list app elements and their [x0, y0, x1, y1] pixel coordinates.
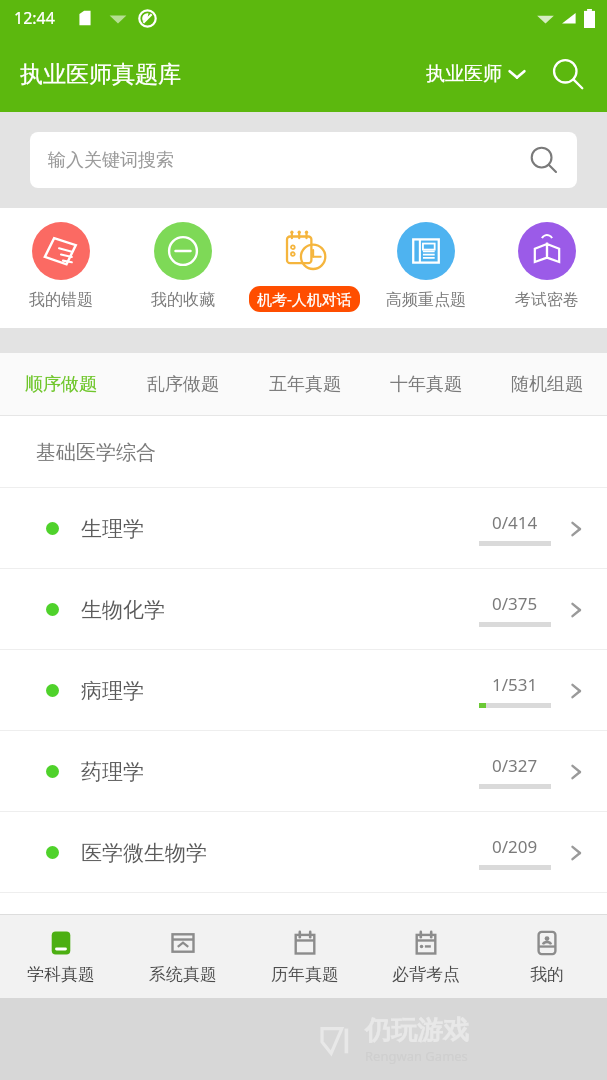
staticText: 医学微生物学 [81, 840, 207, 866]
staticText: 执业医师真题库 [20, 60, 181, 89]
staticText: 高频重点题 [386, 290, 466, 310]
staticText: 我的收藏 [151, 290, 215, 310]
button[interactable]: 五年真题 [244, 353, 365, 415]
button[interactable]: 生理学 [0, 488, 607, 569]
button[interactable]: 乱序做题 [122, 353, 244, 415]
staticText: 十年真题 [390, 373, 462, 396]
staticText: 0/209 [492, 835, 538, 858]
button[interactable]: 病理学 [0, 650, 607, 731]
staticText: 考试密卷 [515, 290, 579, 310]
button[interactable]: 随机组题 [486, 353, 607, 415]
staticText: 12:44 [14, 7, 55, 29]
staticText: 我的 [530, 964, 564, 985]
staticText: 必背考点 [392, 964, 460, 985]
button[interactable]: 十年真题 [365, 353, 486, 415]
button[interactable]: 医学微生物学 [0, 812, 607, 893]
button[interactable]: 顺序做题 [0, 353, 122, 415]
button[interactable]: 执业医师 [422, 56, 531, 92]
button[interactable]: 考试密卷 [486, 222, 607, 328]
staticText: 我的错题 [29, 290, 93, 310]
staticText: 历年真题 [271, 964, 339, 985]
button[interactable]: 高频重点题 [365, 222, 486, 328]
staticText: 五年真题 [269, 373, 341, 396]
staticText: 病理学 [81, 678, 144, 704]
staticText: 0/375 [492, 592, 538, 615]
button[interactable]: 学科真题 [0, 915, 122, 998]
staticText: 执业医师 [426, 62, 502, 86]
button[interactable]: Search [545, 51, 591, 97]
staticText: 生理学 [81, 516, 144, 542]
other: Search [529, 145, 559, 175]
button[interactable]: 我的错题 [0, 222, 122, 328]
staticText: 机考-人机对话 [257, 289, 352, 309]
button[interactable]: 历年真题 [244, 915, 365, 998]
staticText: 随机组题 [511, 373, 583, 396]
staticText: 仍玩游戏 [365, 1014, 469, 1047]
staticText: 基础医学综合 [36, 440, 156, 465]
button[interactable]: 生物化学 [0, 569, 607, 650]
button[interactable]: 我的 [486, 915, 607, 998]
staticText: 生物化学 [81, 597, 165, 623]
button[interactable]: 必背考点 [365, 915, 486, 998]
staticText: 乱序做题 [147, 373, 219, 396]
staticText: 药理学 [81, 759, 144, 785]
button[interactable]: 药理学 [0, 731, 607, 812]
button[interactable]: 我的收藏 [122, 222, 244, 328]
button[interactable]: 机考-人机对话 [244, 222, 365, 328]
staticText: 系统真题 [149, 964, 217, 985]
staticText: 0/414 [492, 511, 538, 534]
button[interactable]: 系统真题 [122, 915, 244, 998]
staticText: 顺序做题 [25, 373, 97, 396]
staticText: 输入关键词搜索 [48, 149, 174, 172]
staticText: 1/531 [492, 673, 538, 696]
staticText: 学科真题 [27, 964, 95, 985]
staticText: 0/327 [492, 754, 538, 777]
button[interactable]: 输入关键词搜索 [30, 132, 577, 188]
